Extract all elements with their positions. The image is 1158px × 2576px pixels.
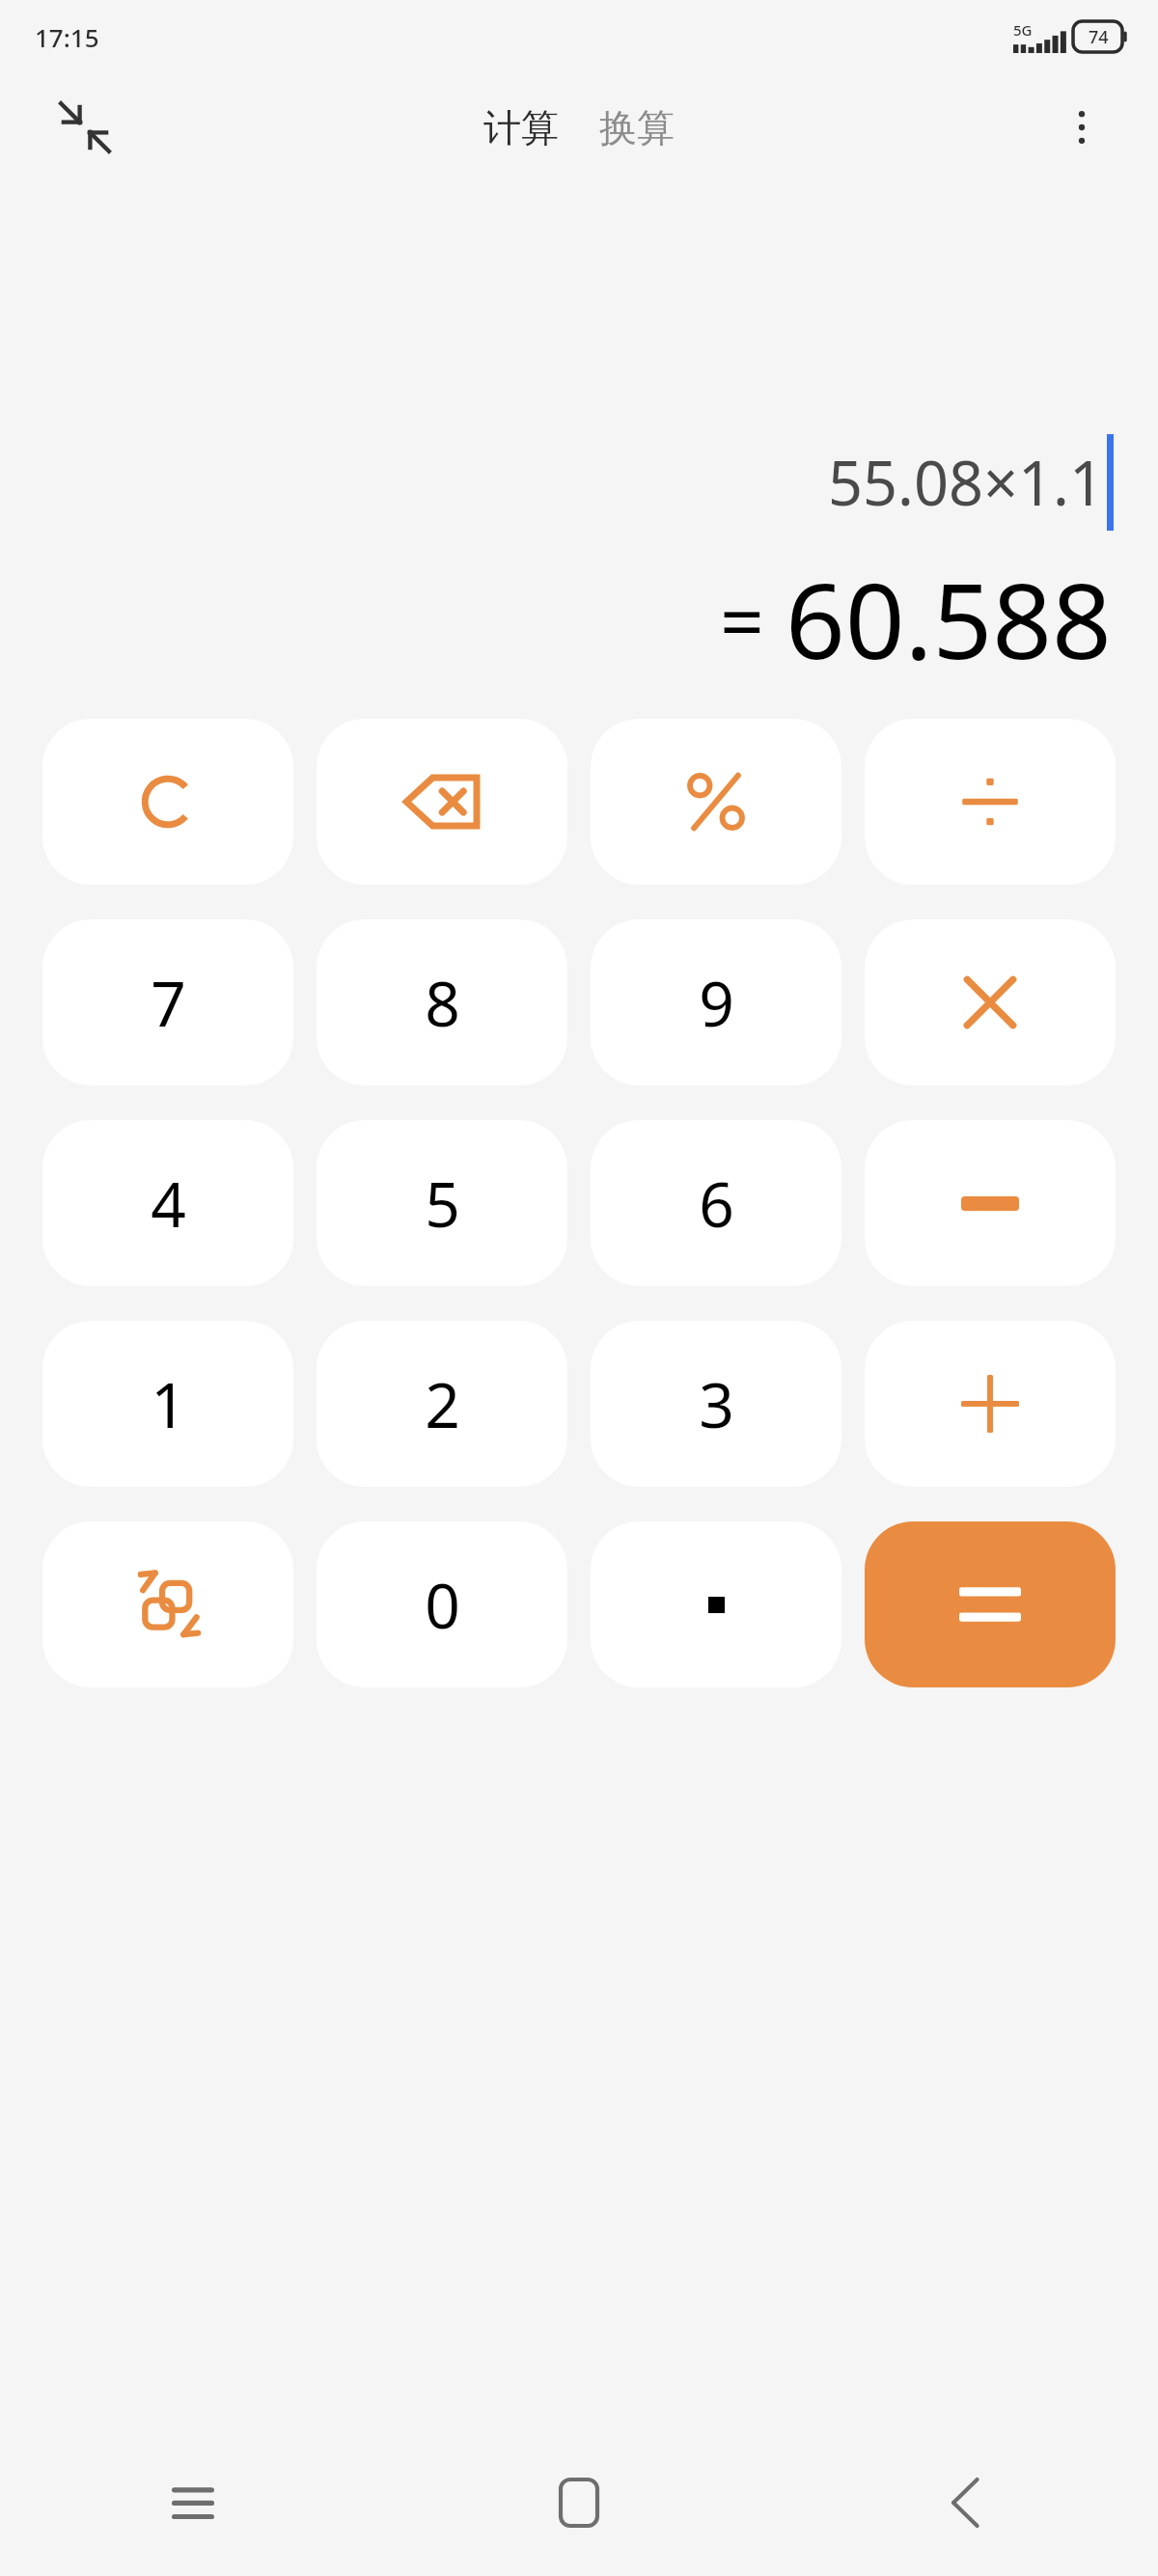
button[interactable]: Minus: [865, 1120, 1116, 1286]
button[interactable]: 0: [317, 1521, 567, 1687]
button[interactable]: Collapse: [44, 87, 125, 168]
staticText: 0: [425, 1563, 460, 1647]
staticText: 55.08×1.1: [828, 441, 1105, 524]
staticText: 9: [699, 961, 734, 1045]
staticText: 7: [151, 961, 186, 1045]
staticText: =: [720, 566, 764, 671]
staticText: 换算: [599, 104, 675, 151]
staticText: 计算: [483, 104, 559, 151]
staticText: 4: [151, 1162, 186, 1246]
button[interactable]: 2: [317, 1321, 567, 1487]
button[interactable]: Back: [911, 2449, 1019, 2557]
button[interactable]: 8: [317, 919, 567, 1085]
button[interactable]: 9: [591, 919, 841, 1085]
button[interactable]: Decimal point: [591, 1521, 841, 1687]
staticText: 5: [425, 1162, 460, 1246]
button[interactable]: 换算: [590, 96, 684, 159]
staticText: 1: [151, 1362, 186, 1446]
staticText: 6: [699, 1162, 734, 1246]
button[interactable]: 1: [42, 1321, 293, 1487]
button[interactable]: 7: [42, 919, 293, 1085]
button[interactable]: Scientific functions: [42, 1521, 293, 1687]
button[interactable]: Backspace: [317, 719, 567, 885]
staticText: 3: [699, 1362, 734, 1446]
staticText: 2: [425, 1362, 460, 1446]
button[interactable]: 计算: [474, 96, 568, 159]
button[interactable]: Home: [525, 2449, 633, 2557]
button[interactable]: 3: [591, 1321, 841, 1487]
button[interactable]: Percent: [591, 719, 841, 885]
staticText: 74: [1089, 25, 1109, 49]
button[interactable]: More options: [1044, 90, 1119, 165]
button[interactable]: Equals: [865, 1521, 1116, 1687]
button[interactable]: 4: [42, 1120, 293, 1286]
staticText: 5G: [1013, 20, 1033, 40]
staticText: 60.588: [786, 548, 1112, 690]
button[interactable]: Plus: [865, 1321, 1116, 1487]
button[interactable]: 6: [591, 1120, 841, 1286]
staticText: 17:15: [35, 20, 99, 54]
button[interactable]: Multiply: [865, 919, 1116, 1085]
button[interactable]: 5: [317, 1120, 567, 1286]
staticText: 8: [425, 961, 460, 1045]
button[interactable]: Recents: [139, 2449, 247, 2557]
button[interactable]: Divide: [865, 719, 1116, 885]
button[interactable]: Clear: [42, 719, 293, 885]
